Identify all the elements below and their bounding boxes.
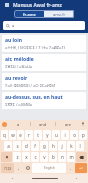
button[interactable]: Home xyxy=(25,174,64,183)
button[interactable]: are xyxy=(56,120,80,128)
staticText: a xyxy=(17,122,20,127)
staticText: d xyxy=(25,143,28,149)
button[interactable]: h xyxy=(49,141,57,151)
staticText: q xyxy=(3,132,6,138)
staticText: z xyxy=(16,154,19,160)
staticText: , xyxy=(18,165,20,171)
button[interactable]: air, mélodie xyxy=(2,54,86,71)
staticText: g xyxy=(43,143,46,149)
staticText: amz-fr xyxy=(53,12,66,17)
staticText: b xyxy=(52,154,55,160)
staticText: au-dessus, sus, en haut xyxy=(5,94,63,101)
staticText: fr-amz xyxy=(23,12,36,17)
staticText: v xyxy=(43,154,46,160)
button[interactable]: n xyxy=(58,152,66,162)
staticText: au loin xyxy=(5,37,22,44)
staticText: au revoir xyxy=(5,75,28,82)
staticText: c xyxy=(34,154,37,160)
button[interactable]: and xyxy=(31,120,55,128)
button[interactable]: fr-amz xyxy=(14,10,44,18)
button[interactable]: b xyxy=(49,152,57,162)
staticText: ?123 xyxy=(4,166,12,171)
button[interactable]: Enter xyxy=(75,163,87,173)
staticText: t xyxy=(37,132,39,138)
button[interactable]: Emoji xyxy=(15,163,23,173)
staticText: and xyxy=(39,122,47,127)
staticText: f xyxy=(34,143,36,149)
staticText: r xyxy=(28,132,30,138)
staticText: p xyxy=(82,132,85,138)
staticText: ⵉⴳⴳⵉ / ⴰⴼⵍⵍⴰ xyxy=(5,102,33,107)
staticText: a xyxy=(7,143,10,149)
button[interactable]: i xyxy=(61,130,69,140)
staticText: o xyxy=(73,132,76,138)
button[interactable]: x xyxy=(22,152,30,162)
staticText: u xyxy=(55,132,58,138)
button[interactable]: o xyxy=(70,130,78,140)
button[interactable]: Back xyxy=(0,174,25,183)
staticText: Manuus Awal fr-amz xyxy=(13,2,62,9)
button[interactable]: a xyxy=(7,120,30,128)
staticText: y xyxy=(46,132,49,138)
staticText: j xyxy=(61,143,63,149)
staticText: w xyxy=(11,132,15,138)
button[interactable]: Voice assistant xyxy=(2,122,7,127)
button[interactable]: f xyxy=(31,141,39,151)
staticText: ⵢⴰⴷ ⵀⵉⵍⵍⵉⵏⵏ / ⴰⵔ ⵉⵎⴰⵍⵉⵍ xyxy=(5,83,56,88)
button[interactable]: q xyxy=(1,130,8,140)
button[interactable]: k xyxy=(67,141,75,151)
button[interactable]: au loin xyxy=(2,35,86,52)
button[interactable]: g xyxy=(40,141,48,151)
button[interactable]: u xyxy=(52,130,60,140)
button[interactable]: Shift xyxy=(1,152,12,162)
staticText: n xyxy=(61,154,64,160)
staticText: ⵉⵥⵉⵡ / ⴰⵣⴰⵡⴰ xyxy=(5,64,33,69)
staticText: i xyxy=(64,132,66,138)
button[interactable]: m xyxy=(67,152,75,162)
staticText: . xyxy=(70,165,72,171)
button[interactable]: a xyxy=(4,141,12,151)
button[interactable]: j xyxy=(58,141,66,151)
button[interactable]: w xyxy=(9,130,16,140)
staticText: k xyxy=(70,143,73,149)
button[interactable]: amz-fr xyxy=(44,10,74,18)
button[interactable]: a xyxy=(3,21,85,30)
button[interactable]: r xyxy=(25,130,33,140)
staticText: ⴰⵜⵜⵓ, ⵏ ⵙⵙⵉⵏⵎⵉ / ⵢ ⵏⵜⴰ ⵢⴰⵇⵇⴰⵢⵏ xyxy=(5,45,66,50)
staticText: m xyxy=(69,154,74,160)
staticText: English xyxy=(44,166,55,170)
staticText: a xyxy=(12,23,15,28)
button[interactable]: au revoir xyxy=(2,73,86,90)
button[interactable]: Change keyboard language xyxy=(24,163,31,173)
button[interactable]: p xyxy=(79,130,87,140)
button[interactable]: ?123 xyxy=(1,163,14,173)
button[interactable]: s xyxy=(13,141,21,151)
button[interactable]: t xyxy=(34,130,42,140)
button[interactable]: y xyxy=(43,130,51,140)
button[interactable]: Microphone xyxy=(80,121,86,127)
button[interactable]: au-dessus, sus, en haut xyxy=(2,92,86,109)
button[interactable]: e xyxy=(17,130,24,140)
staticText: s xyxy=(16,143,19,149)
button[interactable]: c xyxy=(31,152,39,162)
staticText: l xyxy=(79,143,81,149)
button[interactable]: . xyxy=(67,163,74,173)
staticText: air, mélodie xyxy=(5,56,34,63)
staticText: e xyxy=(19,132,22,138)
staticText: x xyxy=(25,154,28,160)
staticText: are xyxy=(65,122,72,127)
button[interactable]: v xyxy=(40,152,48,162)
button[interactable]: Menu xyxy=(4,2,10,8)
button[interactable]: d xyxy=(22,141,30,151)
button[interactable]: l xyxy=(76,141,84,151)
button[interactable]: Hide keyboard xyxy=(64,174,88,183)
button[interactable]: Backspace xyxy=(76,152,87,162)
button[interactable]: z xyxy=(13,152,21,162)
button[interactable]: English xyxy=(32,163,66,173)
staticText: h xyxy=(52,143,55,149)
